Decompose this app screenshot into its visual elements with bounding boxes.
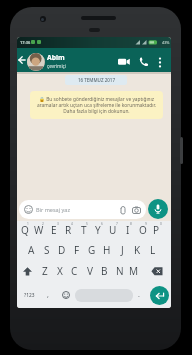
button[interactable]: . xyxy=(134,288,143,302)
staticText: 16 TEMMUZ 2017 xyxy=(78,77,115,83)
staticText: 7 xyxy=(116,222,118,226)
button[interactable]: Y xyxy=(90,222,105,237)
button[interactable]: ?123 xyxy=(21,288,38,302)
staticText: 43% xyxy=(162,40,170,45)
staticText: J xyxy=(121,243,124,257)
button[interactable] xyxy=(21,265,34,278)
staticText: T xyxy=(81,223,87,237)
button[interactable]: B xyxy=(97,263,112,278)
button[interactable]: C xyxy=(67,263,82,278)
staticText: Z xyxy=(42,264,48,278)
staticText: 🔒 Bu sohbete gönderdiğiniz mesajlar ve y… xyxy=(35,96,158,114)
button[interactable] xyxy=(17,54,27,66)
staticText: 1 xyxy=(27,222,29,226)
button[interactable]: T xyxy=(76,222,91,237)
staticText: F xyxy=(74,243,80,257)
staticText: R xyxy=(65,223,72,237)
staticText: 17:36 xyxy=(20,40,31,45)
staticText: E xyxy=(51,223,57,237)
button[interactable] xyxy=(117,55,131,69)
button[interactable]: A xyxy=(24,242,39,257)
staticText: 3 xyxy=(57,222,59,226)
staticText: ?123 xyxy=(24,292,35,299)
button[interactable] xyxy=(138,55,150,69)
staticText: B xyxy=(101,264,108,278)
button[interactable]: M xyxy=(126,263,141,278)
staticText: W xyxy=(34,223,44,237)
button[interactable]: 16 TEMMUZ 2017 xyxy=(65,75,127,85)
button[interactable] xyxy=(75,289,133,302)
staticText: H xyxy=(103,243,111,257)
button[interactable]: Bir mesaj yaz xyxy=(24,200,141,219)
button[interactable]: N xyxy=(112,263,127,278)
staticText: X xyxy=(57,264,63,278)
staticText: S xyxy=(44,243,50,257)
staticText: K xyxy=(134,243,141,257)
button[interactable]: Z xyxy=(37,263,52,278)
button[interactable]: G xyxy=(84,242,99,257)
button[interactable]: O xyxy=(135,222,150,237)
button[interactable] xyxy=(150,266,164,277)
button[interactable] xyxy=(148,199,168,219)
staticText: 5 xyxy=(86,222,88,226)
staticText: C xyxy=(71,264,78,278)
staticText: 8 xyxy=(130,222,132,226)
staticText: 0 xyxy=(160,222,162,226)
button[interactable] xyxy=(155,55,165,70)
staticText: G xyxy=(88,243,96,257)
button[interactable]: Abim xyxy=(47,53,66,69)
staticText: Bir mesaj yaz xyxy=(36,206,70,213)
button[interactable]: P xyxy=(149,222,164,237)
staticText: V xyxy=(87,264,93,278)
staticText: A xyxy=(28,243,35,257)
button[interactable]: F xyxy=(69,242,84,257)
button[interactable]: Q xyxy=(17,222,32,237)
staticText: 6 xyxy=(101,222,103,226)
staticText: M xyxy=(129,264,139,278)
staticText: L xyxy=(150,243,156,257)
staticText: , xyxy=(47,290,49,300)
button[interactable]: J xyxy=(115,242,130,257)
button[interactable] xyxy=(150,286,169,305)
button[interactable]: K xyxy=(130,242,145,257)
staticText: . xyxy=(138,290,140,300)
staticText: N xyxy=(116,264,124,278)
button[interactable]: I xyxy=(120,222,135,237)
button[interactable] xyxy=(61,290,71,300)
staticText: D xyxy=(58,243,66,257)
button[interactable]: , xyxy=(43,288,52,302)
button[interactable]: H xyxy=(99,242,114,257)
staticText: Abim xyxy=(47,53,65,62)
button[interactable]: X xyxy=(52,263,67,278)
button[interactable]: V xyxy=(82,263,97,278)
button[interactable]: R xyxy=(61,222,76,237)
button[interactable]: L xyxy=(145,242,160,257)
staticText: P xyxy=(153,223,160,237)
staticText: 2 xyxy=(42,222,44,226)
staticText: çevrimiçi xyxy=(47,63,66,69)
staticText: Q xyxy=(21,223,29,237)
staticText: U xyxy=(109,223,117,237)
button[interactable]: 🔒 Bu sohbete gönderdiğiniz mesajlar ve y… xyxy=(35,91,158,119)
button[interactable]: S xyxy=(39,242,54,257)
staticText: I xyxy=(126,223,130,237)
staticText: O xyxy=(139,223,147,237)
button[interactable]: E xyxy=(46,222,61,237)
button[interactable] xyxy=(27,53,45,71)
staticText: Y xyxy=(95,223,101,237)
staticText: 4 xyxy=(71,222,73,226)
button[interactable]: D xyxy=(54,242,69,257)
button[interactable]: W xyxy=(31,222,46,237)
button[interactable]: U xyxy=(105,222,120,237)
staticText: 9 xyxy=(145,222,147,226)
